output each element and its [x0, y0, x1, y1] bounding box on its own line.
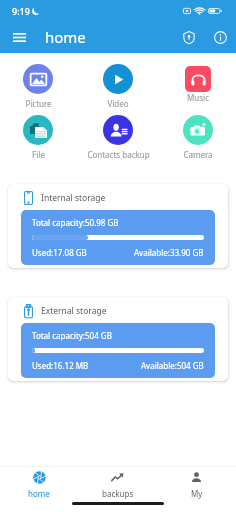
- staticText: File: [32, 149, 45, 160]
- button[interactable]: backups: [78, 467, 157, 503]
- button[interactable]: Video: [82, 64, 154, 109]
- staticText: Internal storage: [41, 192, 106, 204]
- button[interactable]: My: [157, 467, 236, 503]
- staticText: backups: [102, 488, 134, 499]
- staticText: Music: [187, 92, 209, 103]
- staticText: Total capacity:50.98 GB: [32, 217, 119, 228]
- staticText: My: [191, 488, 203, 499]
- button[interactable]: Menu: [9, 27, 29, 47]
- staticText: home: [28, 488, 50, 499]
- button[interactable]: home: [0, 467, 78, 503]
- staticText: Available:504 GB: [141, 360, 204, 371]
- staticText: Picture: [25, 98, 52, 109]
- staticText: home: [45, 27, 86, 47]
- staticText: 9:19: [12, 5, 30, 17]
- button[interactable]: Contacts backup: [82, 115, 154, 160]
- staticText: Available:33.90 GB: [134, 247, 204, 258]
- staticText: Total capacity:504 GB: [32, 330, 112, 341]
- staticText: External storage: [41, 305, 107, 317]
- button[interactable]: Picture: [2, 64, 74, 109]
- button[interactable]: Camera: [162, 115, 234, 160]
- button[interactable]: Internal storage: [8, 184, 228, 268]
- staticText: Camera: [183, 149, 213, 160]
- button[interactable]: Security: [178, 26, 200, 48]
- staticText: Used:16.12 MB: [32, 360, 89, 371]
- staticText: Used:17.08 GB: [32, 247, 87, 258]
- button[interactable]: Music: [162, 64, 234, 103]
- button[interactable]: External storage: [8, 297, 228, 381]
- staticText: Video: [107, 98, 129, 109]
- button[interactable]: Info: [209, 26, 231, 48]
- staticText: Contacts backup: [87, 149, 150, 160]
- button[interactable]: File: [2, 115, 74, 160]
